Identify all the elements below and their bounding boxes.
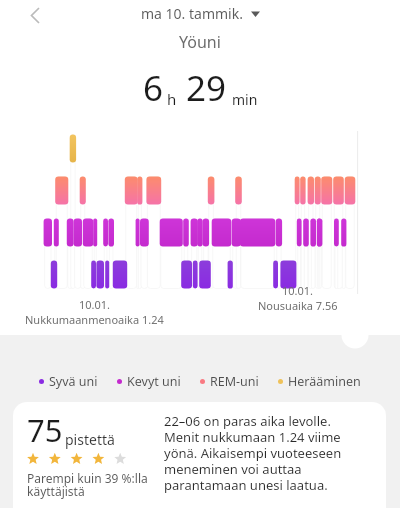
button[interactable]: REM-uni — [200, 373, 259, 390]
staticText: 6 — [143, 64, 164, 112]
staticText: Syvä uni — [49, 373, 98, 390]
staticText: Kevyt uni — [127, 373, 181, 390]
staticText: Yöuni — [179, 31, 221, 53]
staticText: 29 — [186, 64, 227, 112]
staticText: ma 10. tammik. — [141, 4, 243, 23]
staticText: 22–06 on paras aika levolle. Menit nukku… — [164, 412, 342, 494]
staticText: Nousuaika 7.56 — [258, 298, 338, 313]
button[interactable]: 75 — [13, 402, 386, 508]
staticText: Nukkumaanmenoaika 1.24 — [25, 312, 164, 327]
staticText: pistettä — [65, 430, 115, 449]
button[interactable]: Back — [21, 1, 49, 29]
staticText: h — [167, 89, 177, 109]
staticText: 10.01. — [79, 297, 111, 312]
staticText: Herääminen — [288, 373, 361, 390]
staticText: 75 — [27, 409, 63, 451]
button[interactable]: ma 10. tammik. — [141, 4, 260, 23]
button[interactable]: Kevyt uni — [117, 373, 181, 390]
staticText: 10.01. — [282, 283, 314, 298]
button[interactable]: Syvä uni — [39, 373, 98, 390]
button[interactable]: Herääminen — [278, 373, 361, 390]
staticText: REM-uni — [210, 373, 259, 390]
staticText: min — [232, 90, 258, 109]
staticText: Parempi kuin 39 %:lla käyttäjistä — [27, 470, 148, 500]
